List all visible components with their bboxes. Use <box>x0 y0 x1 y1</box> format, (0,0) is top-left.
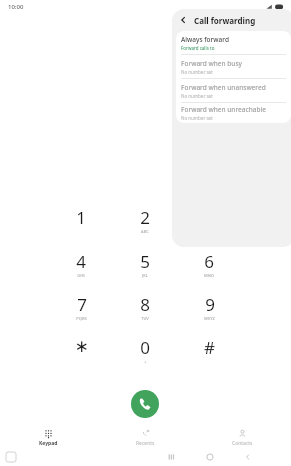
staticText: Forward when unreachable <box>181 105 266 114</box>
staticText: Forward when unanswered <box>181 83 266 92</box>
staticText: TUV <box>141 316 149 321</box>
button[interactable]: Always forward <box>176 31 291 54</box>
button[interactable]: Contacts <box>194 427 291 449</box>
staticText: + <box>144 359 147 364</box>
staticText: 1 <box>76 206 86 229</box>
button[interactable]: Forward when unreachable <box>176 103 291 123</box>
button[interactable]: 5 <box>117 250 173 282</box>
button[interactable]: ∗ <box>53 336 109 368</box>
button[interactable]: Forward when unanswered <box>176 79 291 102</box>
button[interactable]: 8 <box>117 293 173 325</box>
button[interactable]: Back <box>242 451 254 463</box>
button[interactable]: 9 <box>181 293 237 325</box>
staticText: JKL <box>142 273 148 278</box>
staticText: 7 <box>77 293 87 316</box>
staticText: PQRS <box>76 316 87 321</box>
staticText: 9 <box>205 293 215 316</box>
button[interactable]: Keypad <box>0 427 97 449</box>
staticText: Always forward <box>181 35 229 44</box>
staticText: ABC <box>141 229 149 234</box>
staticText: 4 <box>76 250 86 273</box>
staticText: 10:00 <box>8 3 24 11</box>
staticText: 2 <box>140 206 150 229</box>
button[interactable]: Recents <box>97 427 194 449</box>
staticText: 0 <box>140 336 150 359</box>
button[interactable]: 0 <box>117 336 173 368</box>
staticText: Recents <box>136 440 155 447</box>
staticText: GHI <box>77 273 85 278</box>
button[interactable]: Forward when busy <box>176 55 291 78</box>
staticText: Forward calls to <box>181 45 215 51</box>
button[interactable]: 2 <box>117 206 173 238</box>
staticText: ∗ <box>74 336 89 356</box>
button[interactable]: 4 <box>53 250 109 282</box>
button[interactable]: Back <box>178 14 190 26</box>
staticText: Call forwarding <box>194 15 256 26</box>
staticText: WXYZ <box>204 316 215 321</box>
button[interactable]: 1 <box>53 206 109 238</box>
staticText: No number set <box>181 93 213 99</box>
staticText: # <box>204 336 215 359</box>
staticText: Forward when busy <box>181 59 242 68</box>
button[interactable]: 7 <box>53 293 109 325</box>
button[interactable]: 6 <box>181 250 237 282</box>
button[interactable]: Home <box>204 451 216 463</box>
staticText: Keypad <box>39 440 58 447</box>
staticText: No number set <box>181 69 213 75</box>
button[interactable]: Keyboard <box>6 452 16 462</box>
button[interactable]: # <box>181 336 237 368</box>
staticText: No number set <box>181 115 213 121</box>
staticText: 8 <box>140 293 150 316</box>
button[interactable]: Recent apps <box>165 451 177 463</box>
staticText: 6 <box>204 250 214 273</box>
button[interactable]: Call <box>131 390 159 418</box>
staticText: 5 <box>140 250 150 273</box>
staticText: Contacts <box>232 440 253 447</box>
staticText: MNO <box>204 273 214 278</box>
